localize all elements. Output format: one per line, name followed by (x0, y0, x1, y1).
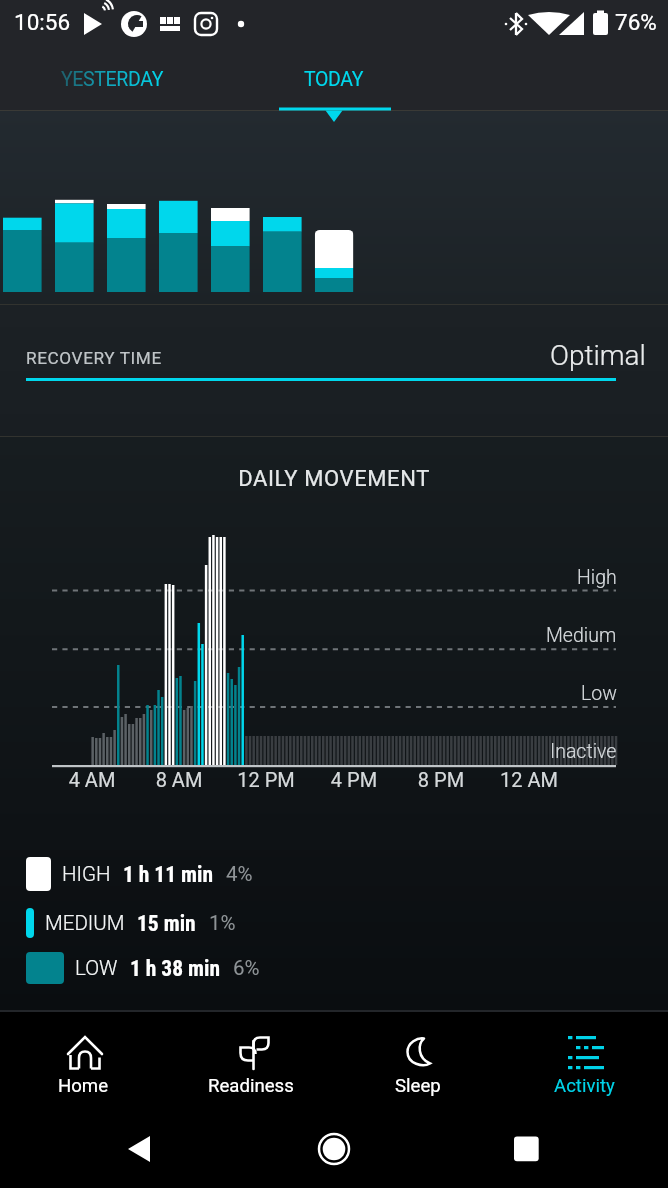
staticText: RECOVERY TIME (26, 348, 162, 368)
staticText: 10:56 (14, 9, 71, 35)
staticText: 4% (226, 862, 253, 886)
button[interactable]: Home (299, 1125, 369, 1165)
staticText: DAILY MOVEMENT (0, 466, 668, 492)
button[interactable]: Activity (501, 1013, 668, 1101)
staticText: High (577, 566, 617, 589)
staticText: Readiness (208, 1075, 294, 1097)
staticText: Inactive (550, 740, 617, 763)
staticText: Low (581, 682, 617, 705)
staticText: Activity (554, 1075, 615, 1097)
staticText: HIGH (62, 862, 111, 886)
staticText: 12 PM (221, 768, 311, 791)
staticText: 15 min (137, 911, 196, 936)
button[interactable]: MEDIUM (0, 908, 668, 938)
button[interactable]: HIGH (0, 857, 668, 891)
staticText: 8 AM (134, 768, 224, 791)
button[interactable]: RECOVERY TIME (0, 305, 668, 436)
staticText: 4 PM (309, 768, 399, 791)
button[interactable]: Home (0, 1013, 167, 1101)
staticText: 8 PM (396, 768, 486, 791)
button[interactable]: Back (104, 1125, 174, 1165)
staticText: 1% (209, 911, 236, 935)
button[interactable]: Sleep (334, 1013, 501, 1101)
staticText: YESTERDAY (61, 68, 164, 91)
staticText: 1 h 38 min (130, 956, 220, 981)
button[interactable]: YESTERDAY (0, 48, 224, 110)
button[interactable]: TODAY (222, 48, 446, 110)
staticText: 12 AM (484, 768, 574, 791)
staticText: Medium (546, 624, 617, 647)
staticText: 76% (615, 9, 657, 35)
button[interactable]: LOW (0, 952, 668, 984)
staticText: Home (58, 1075, 109, 1097)
staticText: MEDIUM (45, 911, 125, 935)
staticText: LOW (75, 956, 118, 980)
staticText: 6% (233, 956, 260, 980)
staticText: TODAY (304, 68, 364, 91)
staticText: 4 AM (47, 768, 137, 791)
staticText: 1 h 11 min (123, 862, 213, 887)
button[interactable]: Recent apps (491, 1125, 561, 1165)
button[interactable]: Readiness (167, 1013, 334, 1101)
staticText: Optimal (550, 339, 646, 372)
staticText: Sleep (395, 1075, 441, 1097)
